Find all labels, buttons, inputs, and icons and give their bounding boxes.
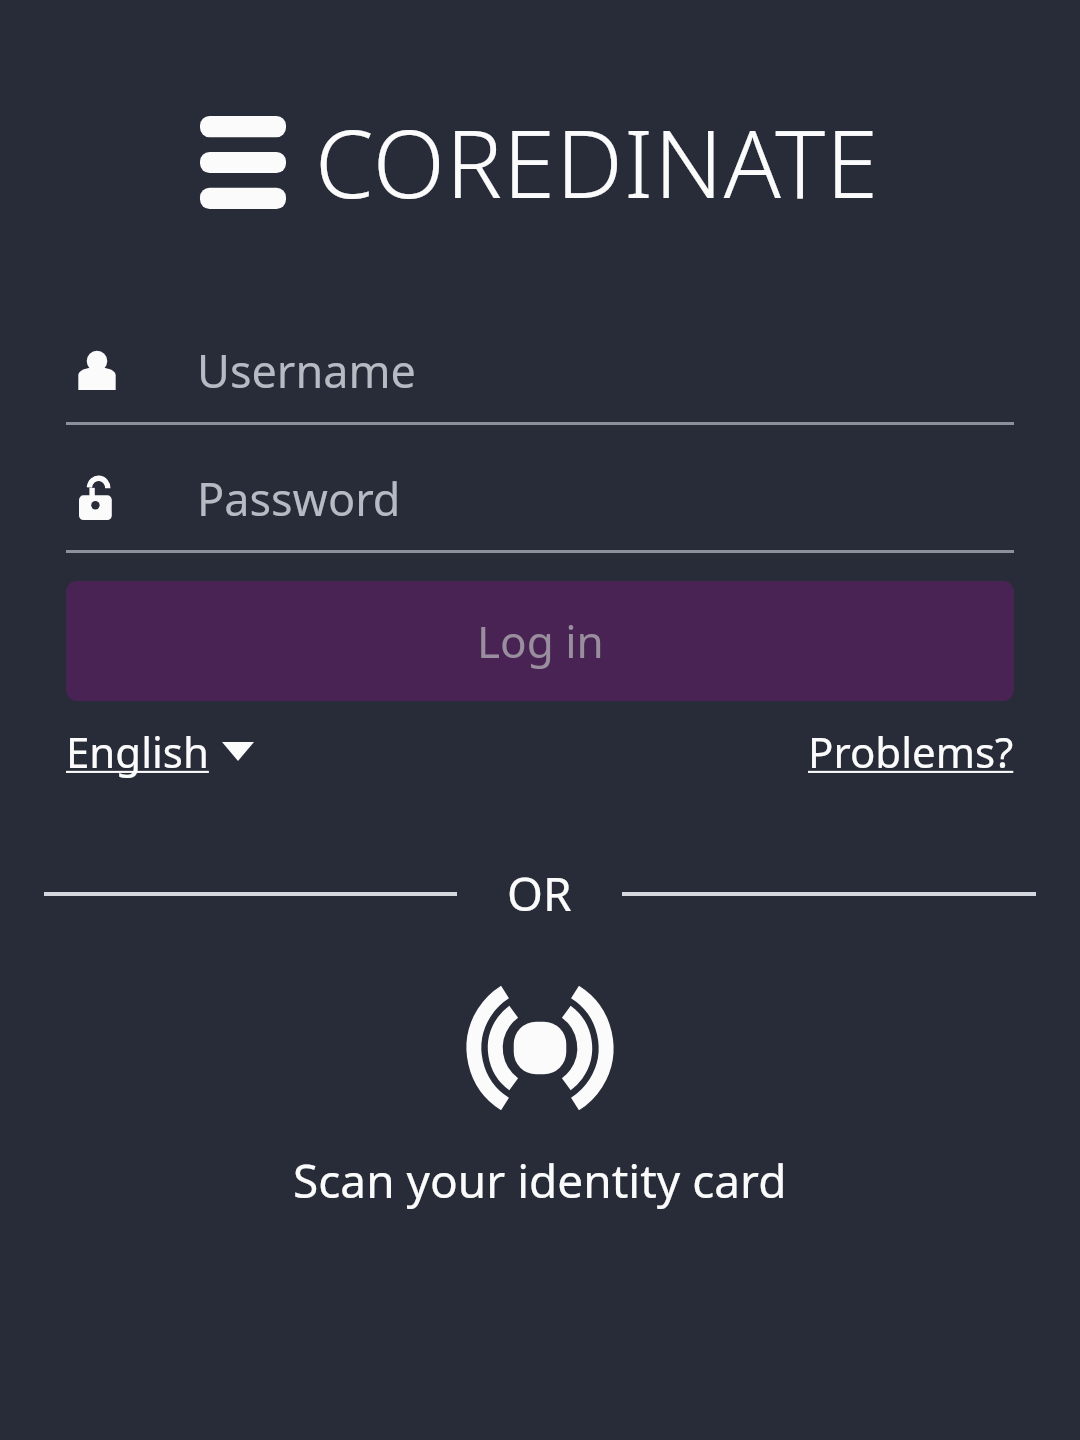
staticText: Problems? <box>808 723 1014 780</box>
button[interactable]: English <box>66 723 254 780</box>
staticText: COREDINATE <box>315 98 880 226</box>
button[interactable]: Scan identity card <box>0 977 1080 1212</box>
button[interactable]: Username field <box>66 318 1014 422</box>
staticText: Username <box>197 340 416 401</box>
staticText: OR <box>507 862 572 925</box>
staticText: Log in <box>477 611 604 671</box>
staticText: Scan your identity card <box>293 1149 787 1212</box>
button[interactable]: Problems? <box>808 723 1014 780</box>
button[interactable]: Password field <box>66 446 1014 550</box>
staticText: English <box>66 723 209 780</box>
button[interactable]: Log in <box>66 581 1014 701</box>
other: Select language <box>222 742 254 761</box>
other: Scan identity card <box>451 977 629 1119</box>
staticText: Password <box>197 468 401 529</box>
